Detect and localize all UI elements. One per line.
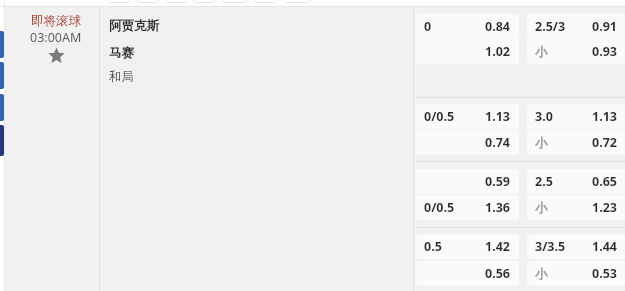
staticText: 小 xyxy=(535,135,548,151)
button[interactable]: 小 xyxy=(527,261,625,286)
button[interactable]: 0/0.5 xyxy=(416,195,519,220)
button[interactable]: 即将滚球 xyxy=(12,13,99,46)
button[interactable]: Sport category xyxy=(0,94,4,121)
staticText: 3.0 xyxy=(535,108,553,125)
button[interactable]: 0.5 xyxy=(416,234,519,259)
button[interactable]: 2.5/3 xyxy=(527,14,625,39)
button[interactable]: 马赛 xyxy=(109,41,359,65)
staticText: 1.13 xyxy=(485,108,510,125)
staticText: 0.84 xyxy=(485,18,510,35)
staticText: 0.74 xyxy=(485,134,510,151)
staticText: 0.93 xyxy=(592,43,617,60)
staticText: 2.5 xyxy=(535,173,553,190)
staticText: 3/3.5 xyxy=(535,238,566,255)
staticText: 0.65 xyxy=(592,173,617,190)
staticText: 阿贾克斯 xyxy=(109,18,159,34)
button[interactable]: League filter xyxy=(135,0,160,3)
staticText: 1.23 xyxy=(592,199,617,216)
staticText: 0 xyxy=(424,18,432,35)
button[interactable]: League filter xyxy=(221,0,249,3)
button[interactable]: 0/0.5 xyxy=(416,104,519,129)
staticText: 0.53 xyxy=(592,265,617,282)
staticText: 0/0.5 xyxy=(424,199,455,216)
button[interactable]: 3/3.5 xyxy=(527,234,625,259)
staticText: 1.13 xyxy=(592,108,617,125)
button[interactable]: 0.56 xyxy=(416,261,519,286)
staticText: 2.5/3 xyxy=(535,18,566,35)
button[interactable]: 0 xyxy=(416,14,519,39)
staticText: 小 xyxy=(535,200,548,216)
button[interactable]: 3.0 xyxy=(527,104,625,129)
button[interactable]: Favourite xyxy=(48,47,65,64)
staticText: 和局 xyxy=(109,69,134,85)
staticText: 小 xyxy=(535,44,548,60)
button[interactable]: 小 xyxy=(527,39,625,64)
staticText: 1.36 xyxy=(485,199,510,216)
staticText: 即将滚球 xyxy=(31,13,81,29)
button[interactable]: 小 xyxy=(527,130,625,155)
button[interactable]: Sport category xyxy=(0,62,4,89)
staticText: 1.02 xyxy=(485,43,510,60)
staticText: 0.72 xyxy=(592,134,617,151)
button[interactable]: League filter xyxy=(253,0,278,3)
button[interactable]: 小 xyxy=(527,195,625,220)
button[interactable]: League filter xyxy=(283,0,311,3)
button[interactable]: 0.59 xyxy=(416,169,519,194)
button[interactable]: League filter xyxy=(192,0,217,3)
staticText: 小 xyxy=(535,266,548,282)
staticText: 0.56 xyxy=(485,265,510,282)
staticText: 03:00AM xyxy=(30,29,82,46)
staticText: 1.44 xyxy=(592,238,617,255)
button[interactable]: 1.02 xyxy=(416,39,519,64)
staticText: 0/0.5 xyxy=(424,108,455,125)
button[interactable]: Sport category xyxy=(0,125,4,156)
button[interactable]: 阿贾克斯 xyxy=(109,14,359,38)
button[interactable]: League filter xyxy=(164,0,189,3)
button[interactable]: 和局 xyxy=(109,65,359,89)
staticText: 0.5 xyxy=(424,238,442,255)
staticText: 0.59 xyxy=(485,173,510,190)
button[interactable]: 0.74 xyxy=(416,130,519,155)
staticText: 马赛 xyxy=(109,45,134,61)
staticText: 1.42 xyxy=(485,238,510,255)
button[interactable]: League filter xyxy=(106,0,131,3)
staticText: 0.91 xyxy=(592,18,617,35)
button[interactable]: 2.5 xyxy=(527,169,625,194)
button[interactable]: Sport category xyxy=(0,31,4,58)
